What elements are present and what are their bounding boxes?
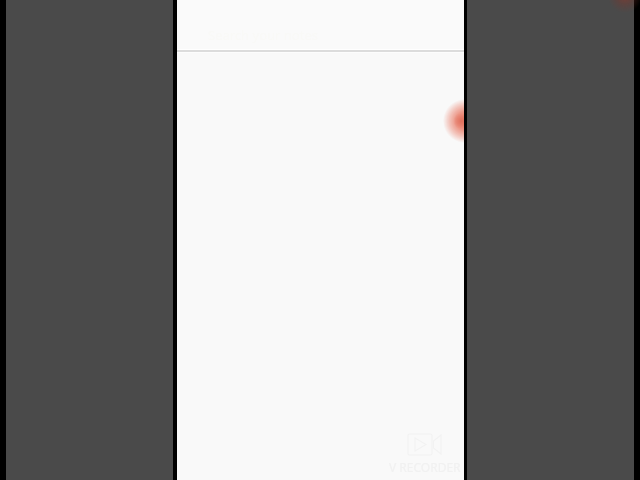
button[interactable]: Add note [177,0,464,480]
